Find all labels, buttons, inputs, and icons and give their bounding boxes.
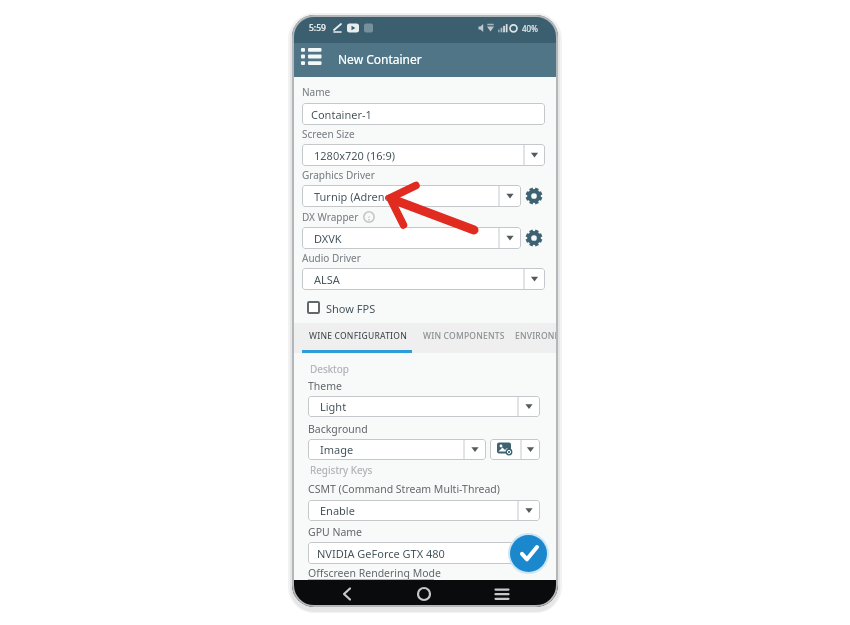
button[interactable] — [522, 184, 546, 208]
button[interactable]: Turnip (Adreno) — [302, 185, 521, 207]
button[interactable]: WIN COMPONENTS — [423, 330, 505, 342]
staticText: 40% — [522, 23, 538, 34]
staticText: Audio Driver — [302, 251, 361, 265]
button[interactable] — [494, 586, 510, 602]
staticText: Graphics Driver — [302, 168, 375, 182]
button[interactable] — [416, 586, 432, 602]
button[interactable] — [510, 535, 547, 572]
staticText: GPU Name — [308, 525, 363, 539]
staticText: 5:59 — [309, 22, 326, 34]
button[interactable] — [307, 301, 320, 314]
staticText: Desktop — [310, 362, 349, 376]
staticText: Screen Size — [302, 127, 355, 141]
button[interactable]: Enable — [308, 500, 540, 521]
staticText: Registry Keys — [310, 463, 373, 477]
button[interactable]: ALSA — [302, 268, 545, 290]
button[interactable]: Image — [308, 439, 486, 460]
button[interactable] — [292, 43, 558, 77]
staticText: ALSA — [314, 272, 340, 287]
staticText: Background — [308, 422, 368, 436]
staticText: Image — [320, 442, 354, 457]
staticText: DXVK — [314, 231, 342, 246]
staticText: Offscreen Rendering Mode — [308, 566, 441, 580]
staticText: NVIDIA GeForce GTX 480 — [317, 546, 445, 561]
button[interactable]: 1280x720 (16:9) — [302, 144, 545, 166]
button[interactable]: DXVK — [302, 227, 521, 249]
button[interactable]: Light — [308, 396, 540, 417]
button[interactable]: ENVIRONMENT — [515, 330, 558, 342]
staticText: 1280x720 (16:9) — [314, 148, 396, 163]
button[interactable] — [522, 226, 546, 250]
button[interactable]: Container-1 — [302, 103, 545, 125]
button[interactable] — [339, 586, 355, 602]
staticText: Turnip (Adreno) — [314, 189, 395, 204]
staticText: Name — [302, 85, 331, 99]
staticText: Enable — [320, 503, 355, 518]
staticText: Theme — [308, 379, 342, 393]
button[interactable]: NVIDIA GeForce GTX 480 — [308, 542, 540, 564]
staticText: CSMT (Command Stream Multi-Thread) — [308, 482, 500, 496]
staticText: New Container — [338, 51, 422, 67]
button[interactable]: WINE CONFIGURATION — [309, 330, 407, 342]
staticText: Light — [320, 399, 347, 414]
staticText: DX Wrapper — [302, 210, 359, 224]
button[interactable] — [301, 46, 322, 67]
staticText: Container-1 — [311, 107, 372, 122]
staticText: Show FPS — [326, 301, 376, 316]
button[interactable] — [490, 439, 540, 460]
